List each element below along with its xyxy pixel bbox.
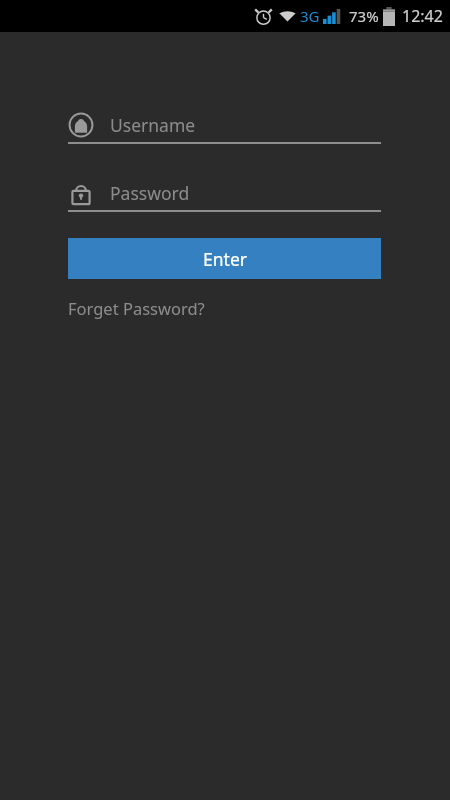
button[interactable]: Username bbox=[68, 110, 381, 140]
staticText: Username bbox=[110, 113, 196, 137]
staticText: 73% bbox=[349, 6, 379, 26]
button[interactable]: Password bbox=[68, 178, 381, 208]
staticText: Forget Password? bbox=[68, 297, 205, 319]
button[interactable]: Forget Password? bbox=[68, 297, 205, 319]
staticText: Password bbox=[110, 181, 190, 205]
staticText: 12:42 bbox=[402, 5, 443, 27]
other: Username bbox=[68, 112, 94, 138]
staticText: Enter bbox=[203, 247, 247, 271]
staticText: 3G bbox=[300, 6, 320, 26]
other: Password bbox=[68, 180, 94, 206]
button[interactable]: Enter bbox=[68, 238, 381, 279]
